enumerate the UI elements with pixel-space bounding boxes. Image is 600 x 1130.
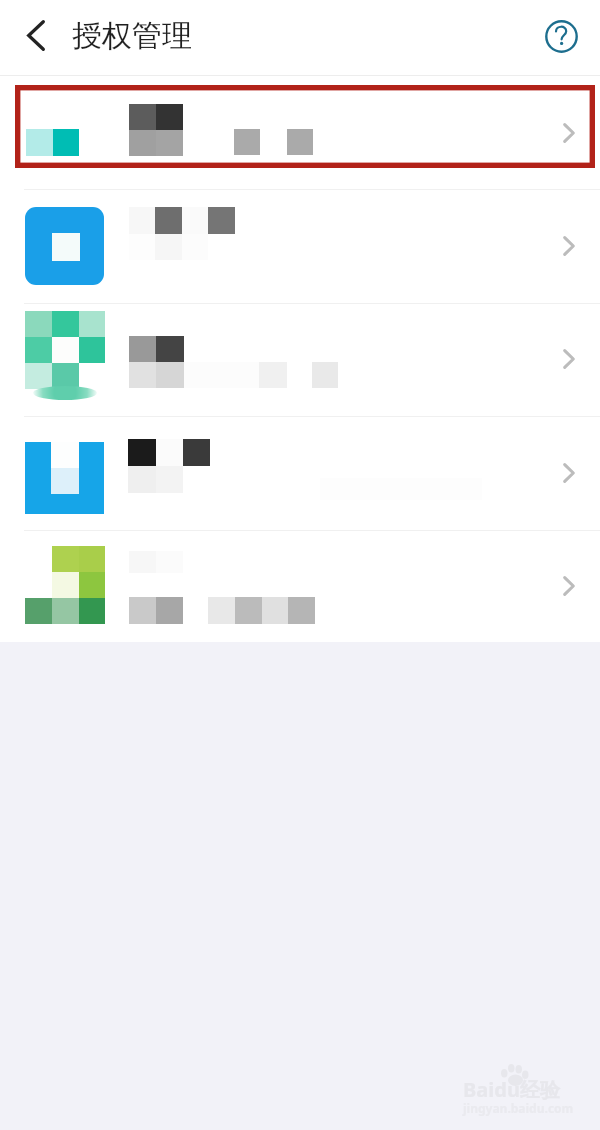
button[interactable]: Authorised app 4 [0,416,600,530]
staticText: Baidu经验 [463,1076,560,1103]
button[interactable]: Authorised app 3 [0,303,600,416]
button[interactable]: Authorised app 5 [0,530,600,642]
button[interactable]: Help [528,0,598,76]
button[interactable]: Back [0,0,62,76]
staticText: 授权管理 [72,17,192,55]
button[interactable]: Authorised app 2 [0,189,600,303]
staticText: jingyan.baidu.com [463,1100,574,1116]
button[interactable]: Authorised app 1 [0,76,600,189]
